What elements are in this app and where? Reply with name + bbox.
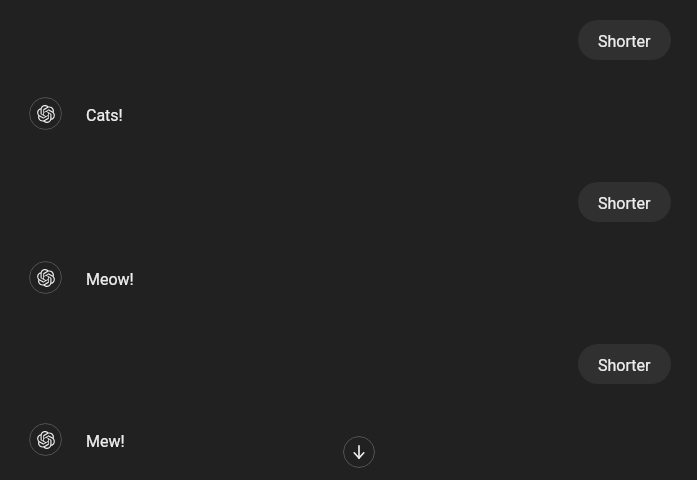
staticText: Shorter (598, 356, 651, 375)
button[interactable]: ChatGPT (29, 423, 62, 456)
button[interactable]: Shorter (578, 344, 671, 384)
button[interactable]: ChatGPT (29, 97, 62, 130)
staticText: Cats! (86, 106, 123, 125)
staticText: Mew! (86, 432, 125, 451)
button[interactable]: Scroll to bottom (343, 436, 375, 468)
button[interactable]: Shorter (578, 20, 671, 60)
staticText: Shorter (598, 32, 651, 51)
button[interactable]: ChatGPT (29, 261, 62, 294)
staticText: Shorter (598, 194, 651, 213)
button[interactable]: Shorter (578, 182, 671, 222)
staticText: Meow! (86, 270, 134, 289)
